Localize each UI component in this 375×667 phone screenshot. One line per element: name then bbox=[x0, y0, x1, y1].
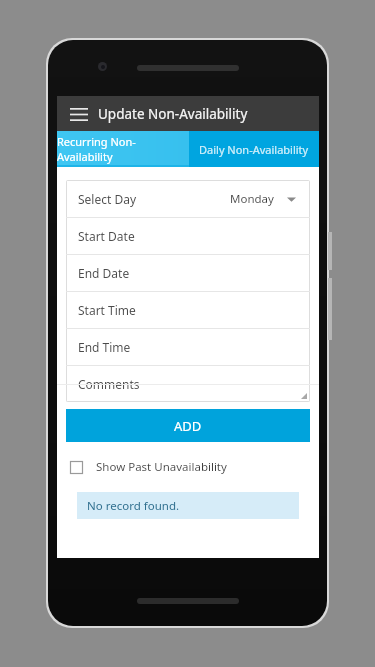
staticText: Daily Non-Availability bbox=[199, 142, 309, 157]
staticText: ADD bbox=[174, 417, 202, 435]
button[interactable]: Comments bbox=[66, 366, 310, 402]
button[interactable]: Show Past Unavailability bbox=[66, 459, 310, 475]
button[interactable]: Select Day bbox=[66, 181, 310, 217]
staticText: No record found. bbox=[87, 498, 180, 514]
button[interactable]: Start Date bbox=[66, 218, 310, 254]
staticText: End Date bbox=[78, 265, 130, 281]
staticText: Monday bbox=[230, 191, 274, 207]
staticText: Select Day bbox=[78, 191, 137, 207]
button[interactable]: Open navigation menu bbox=[65, 100, 93, 128]
button[interactable]: End Date bbox=[66, 255, 310, 291]
button[interactable]: Recurring Non-Availability bbox=[57, 131, 189, 167]
staticText: Start Time bbox=[78, 302, 136, 318]
button[interactable]: Daily Non-Availability bbox=[189, 131, 319, 167]
staticText: Recurring Non-Availability bbox=[57, 134, 189, 164]
button[interactable]: ADD bbox=[66, 409, 310, 442]
button[interactable]: Start Time bbox=[66, 292, 310, 328]
button[interactable]: End Time bbox=[66, 329, 310, 365]
staticText: End Time bbox=[78, 339, 131, 355]
staticText: Update Non-Availability bbox=[98, 105, 248, 123]
staticText: Show Past Unavailability bbox=[96, 459, 227, 475]
staticText: Start Date bbox=[78, 228, 135, 244]
staticText: Comments bbox=[78, 376, 140, 392]
